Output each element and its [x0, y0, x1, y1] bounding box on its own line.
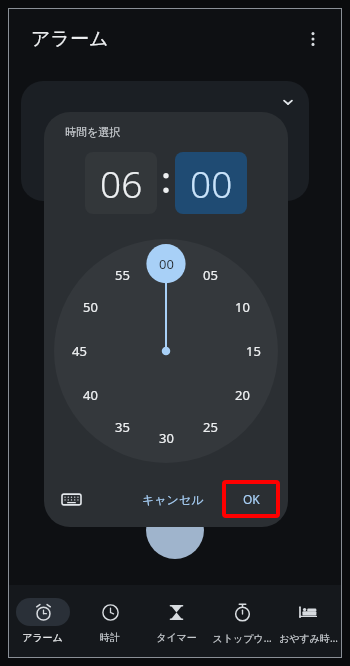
- staticText: 時計: [100, 631, 120, 644]
- button[interactable]: 25: [195, 412, 225, 442]
- staticText: 35: [115, 418, 130, 436]
- button[interactable]: 45: [64, 336, 94, 366]
- staticText: 20: [235, 386, 250, 404]
- button[interactable]: 00: [151, 249, 181, 279]
- staticText: 25: [203, 418, 218, 436]
- button[interactable]: 20: [227, 380, 257, 410]
- button[interactable]: 10: [227, 292, 257, 322]
- staticText: アラーム: [22, 631, 63, 644]
- button[interactable]: ストップウ…: [209, 585, 275, 657]
- button[interactable]: 05: [195, 260, 225, 290]
- staticText: 45: [72, 342, 87, 360]
- button[interactable]: タイマー: [143, 585, 209, 657]
- staticText: タイマー: [156, 631, 197, 644]
- staticText: 55: [115, 266, 130, 284]
- staticText: おやすみ時…: [279, 631, 338, 645]
- button[interactable]: 00: [175, 152, 247, 214]
- button[interactable]: キーボード入力に切り替え: [54, 482, 88, 516]
- button[interactable]: 50: [75, 292, 105, 322]
- staticText: 30: [159, 429, 174, 447]
- staticText: ストップウ…: [212, 631, 272, 645]
- button[interactable]: 時計: [76, 585, 143, 657]
- button[interactable]: 35: [107, 412, 137, 442]
- staticText: 00: [159, 255, 174, 273]
- staticText: 50: [83, 298, 98, 316]
- staticText: 00: [190, 158, 233, 208]
- staticText: 40: [83, 386, 98, 404]
- button[interactable]: その他のオプション: [293, 19, 333, 59]
- staticText: OK: [243, 491, 260, 507]
- button[interactable]: アラームを追加: [146, 501, 204, 559]
- button[interactable]: 15: [238, 336, 268, 366]
- button[interactable]: 55: [107, 260, 137, 290]
- staticText: 10: [235, 298, 250, 316]
- button[interactable]: アラーム: [9, 585, 76, 657]
- button[interactable]: キャンセル: [132, 485, 214, 514]
- button[interactable]: OK: [234, 485, 269, 513]
- button[interactable]: おやすみ時…: [275, 585, 341, 657]
- staticText: 15: [246, 342, 261, 360]
- button[interactable]: 展開: [21, 81, 309, 201]
- button[interactable]: 30: [151, 423, 181, 453]
- button[interactable]: 06: [85, 152, 157, 214]
- staticText: 05: [203, 266, 218, 284]
- button[interactable]: 展開: [275, 89, 301, 115]
- staticText: 06: [100, 158, 143, 208]
- button[interactable]: 40: [75, 380, 105, 410]
- staticText: キャンセル: [142, 492, 204, 507]
- staticText: アラーム: [31, 27, 109, 51]
- staticText: 時間を選択: [65, 125, 121, 139]
